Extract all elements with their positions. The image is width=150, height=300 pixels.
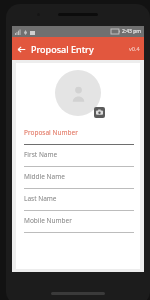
- button[interactable]: Profile photo: [55, 70, 101, 116]
- button[interactable]: Back: [14, 42, 28, 56]
- button[interactable]: Proposal Number: [16, 123, 140, 145]
- staticText: v0.4: [129, 45, 140, 52]
- button[interactable]: First Name: [16, 145, 140, 167]
- staticText: Proposal Number: [24, 128, 78, 137]
- staticText: Mobile Number: [24, 216, 72, 225]
- staticText: First Name: [24, 150, 58, 159]
- button[interactable]: Mobile Number: [16, 211, 140, 233]
- staticText: Last Name: [24, 194, 57, 203]
- staticText: Proposal Entry: [31, 43, 94, 55]
- button[interactable]: Take photo: [94, 107, 105, 118]
- button[interactable]: Middle Name: [16, 167, 140, 189]
- staticText: 2:43 pm: [122, 28, 141, 35]
- button[interactable]: Last Name: [16, 189, 140, 211]
- staticText: Middle Name: [24, 172, 65, 181]
